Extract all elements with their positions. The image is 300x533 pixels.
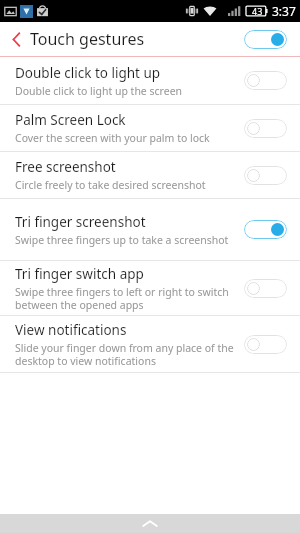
button[interactable]: Off xyxy=(244,71,287,90)
staticText: Tri finger switch app xyxy=(15,265,144,283)
staticText: 43 xyxy=(252,5,263,17)
button[interactable]: On xyxy=(244,30,287,49)
button[interactable]: Palm Screen Lock xyxy=(0,105,300,151)
button[interactable]: Double click to light up xyxy=(0,57,300,104)
staticText: Cover the screen with your palm to lock xyxy=(15,131,210,145)
button[interactable]: Tri finger switch app xyxy=(0,261,300,315)
staticText: Double click to light up xyxy=(15,64,161,82)
staticText: Free screenshot xyxy=(15,158,116,176)
staticText: 3:37 xyxy=(272,3,296,19)
button[interactable]: Back xyxy=(0,24,153,54)
staticText: Swipe three fingers to left or right to … xyxy=(15,285,234,312)
staticText: Circle freely to take desired screenshot xyxy=(15,178,206,192)
staticText: Double click to light up the screen xyxy=(15,84,183,98)
staticText: Palm Screen Lock xyxy=(15,111,126,129)
button[interactable]: Free screenshot xyxy=(0,152,300,198)
button[interactable]: Off xyxy=(244,166,287,185)
button[interactable]: Tri finger screenshot xyxy=(0,199,300,260)
button[interactable]: Off xyxy=(244,119,287,138)
button[interactable]: Off xyxy=(244,279,287,298)
button[interactable]: On xyxy=(244,220,287,239)
staticText: Touch gestures xyxy=(30,28,145,50)
staticText: View notifications xyxy=(15,321,127,339)
staticText: Swipe three fingers up to take a screens… xyxy=(15,233,229,247)
button[interactable]: Off xyxy=(244,335,287,354)
button[interactable]: View notifications xyxy=(0,316,300,372)
staticText: Tri finger screenshot xyxy=(15,213,146,231)
staticText: Slide your finger down from any place of… xyxy=(15,341,234,368)
